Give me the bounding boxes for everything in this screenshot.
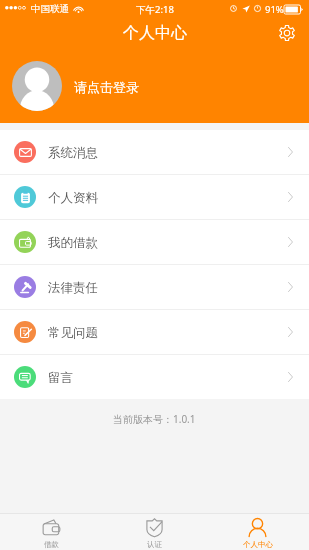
button[interactable]: 借款 [0, 514, 103, 550]
staticText: 个人中心 [243, 540, 273, 549]
button[interactable]: 认证 [103, 514, 206, 550]
staticText: 个人资料 [48, 190, 98, 206]
staticText: 留言 [48, 370, 73, 386]
staticText: 系统消息 [48, 145, 98, 161]
staticText: 法律责任 [48, 280, 98, 296]
staticText: 借款 [44, 540, 59, 549]
button[interactable]: Settings [273, 19, 300, 46]
button[interactable]: 留言 [0, 355, 309, 399]
button[interactable]: 我的借款 [0, 220, 309, 264]
button[interactable]: 个人中心 [206, 514, 309, 550]
staticText: 请点击登录 [74, 79, 139, 95]
staticText: 91% [265, 3, 284, 16]
button[interactable] [12, 61, 62, 111]
staticText: 常见问题 [48, 325, 98, 341]
staticText: 我的借款 [48, 235, 98, 251]
button[interactable]: 系统消息 [0, 130, 309, 174]
button[interactable]: 个人资料 [0, 175, 309, 219]
staticText: 当前版本号：1.0.1 [113, 412, 196, 426]
staticText: 个人中心 [123, 23, 187, 43]
staticText: 下午2:18 [136, 3, 174, 16]
button[interactable]: 常见问题 [0, 310, 309, 354]
staticText: 中国联通 [31, 3, 69, 15]
staticText: 认证 [147, 540, 162, 549]
button[interactable]: 法律责任 [0, 265, 309, 309]
